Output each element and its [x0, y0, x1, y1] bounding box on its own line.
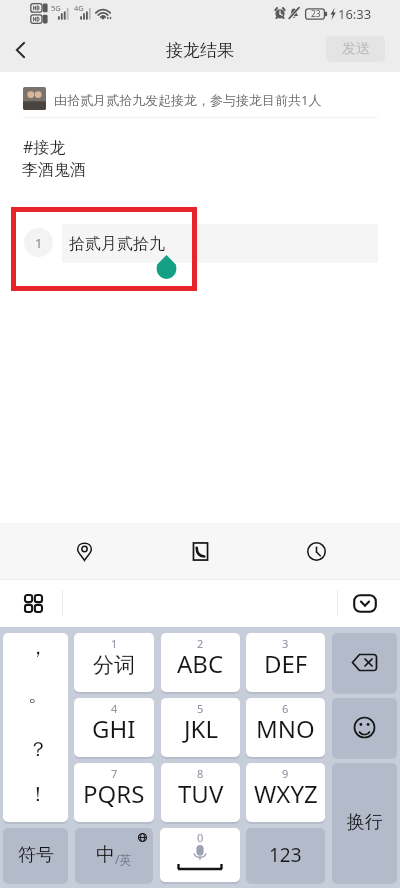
button[interactable]: Language: [75, 828, 153, 882]
staticText: 7: [111, 766, 118, 781]
staticText: ，: [28, 635, 48, 660]
staticText: 。: [28, 682, 48, 707]
staticText: WXYZ: [254, 777, 318, 810]
staticText: 9: [282, 766, 289, 781]
staticText: PQRS: [83, 777, 145, 810]
staticText: 23: [311, 8, 321, 20]
button[interactable]: 发送: [326, 36, 385, 62]
staticText: 0: [197, 830, 204, 845]
staticText: MNO: [256, 712, 315, 745]
staticText: 123: [269, 842, 302, 868]
staticText: 5: [197, 701, 204, 716]
staticText: /英: [115, 851, 132, 867]
staticText: 发送: [342, 40, 370, 58]
staticText: JKL: [184, 712, 218, 745]
staticText: 16:33: [338, 5, 372, 23]
staticText: ABC: [177, 647, 224, 680]
button[interactable]: TUV: [161, 763, 240, 822]
staticText: 3: [282, 636, 289, 651]
staticText: 1: [111, 636, 118, 651]
button[interactable]: Symbols: [3, 828, 68, 882]
button[interactable]: DEF: [246, 633, 325, 692]
staticText: 分词: [93, 652, 135, 678]
staticText: 符号: [18, 844, 54, 867]
button[interactable]: 123: [246, 828, 325, 882]
button[interactable]: Emoji: [332, 698, 397, 757]
staticText: DEF: [264, 647, 308, 680]
button[interactable]: Location: [62, 529, 106, 573]
button[interactable]: 拾贰月贰拾九: [62, 224, 378, 263]
staticText: ！: [28, 782, 48, 807]
button[interactable]: Backspace: [332, 633, 397, 692]
staticText: 8: [197, 766, 204, 781]
button[interactable]: ABC: [161, 633, 240, 692]
button[interactable]: 分词: [74, 633, 154, 692]
staticText: ？: [28, 737, 48, 762]
staticText: 6: [282, 701, 289, 716]
staticText: TUV: [178, 777, 224, 810]
staticText: GHI: [92, 712, 136, 745]
button[interactable]: WXYZ: [246, 763, 325, 822]
staticText: 4: [111, 701, 118, 716]
button[interactable]: MNO: [246, 698, 325, 757]
staticText: #接龙: [23, 136, 66, 158]
staticText: 中: [96, 843, 115, 867]
staticText: 2: [197, 636, 204, 651]
button[interactable]: Punctuation: [3, 633, 68, 822]
staticText: 5G: [51, 3, 61, 13]
staticText: 4G: [74, 3, 84, 13]
button[interactable]: GHI: [74, 698, 154, 757]
button[interactable]: JKL: [161, 698, 240, 757]
staticText: 接龙结果: [166, 40, 234, 61]
staticText: 换行: [347, 811, 383, 834]
button[interactable]: Keyboard panel: [15, 585, 51, 621]
staticText: 李酒鬼酒: [22, 160, 86, 180]
button[interactable]: Hide keyboard: [346, 584, 384, 622]
button[interactable]: PQRS: [74, 763, 154, 822]
button[interactable]: Call: [178, 529, 222, 573]
button[interactable]: Back: [1, 31, 39, 69]
staticText: 由拾贰月贰拾九发起接龙，参与接龙目前共1人: [54, 91, 322, 109]
staticText: 拾贰月贰拾九: [69, 234, 165, 254]
button[interactable]: History: [294, 529, 338, 573]
button[interactable]: Space: [160, 828, 240, 882]
staticText: 1: [35, 234, 43, 252]
button[interactable]: Enter: [332, 763, 397, 882]
